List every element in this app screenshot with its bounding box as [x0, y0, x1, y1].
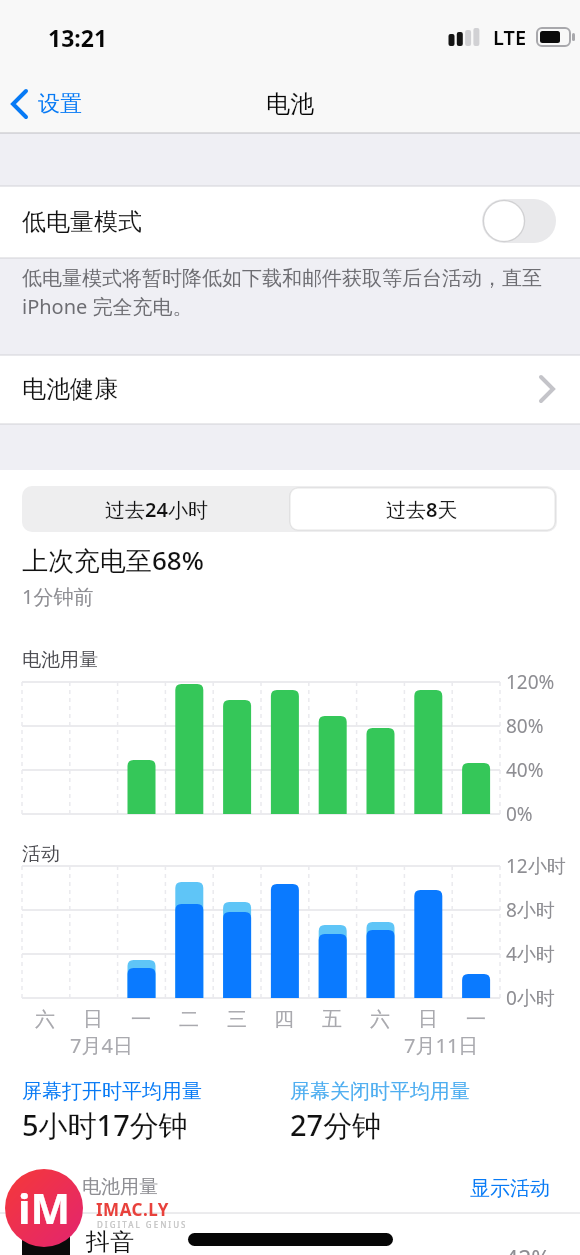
staticText: 0% [506, 801, 533, 827]
staticText: 设置 [38, 90, 82, 118]
staticText: 过去8天 [386, 496, 458, 523]
staticText: 120% [506, 669, 555, 695]
button[interactable] [8, 80, 118, 128]
staticText: 42% [505, 1242, 551, 1255]
staticText: 80% [506, 713, 544, 739]
staticText: 过去24小时 [105, 496, 208, 523]
staticText: 7月4日 [70, 1032, 133, 1059]
staticText: iPhone 完全充电。 [22, 293, 193, 320]
staticText: 电池用量 [82, 1175, 158, 1199]
button[interactable]: 显示活动 [0, 0, 250, 60]
staticText: 屏幕打开时平均用量 [22, 1079, 202, 1104]
staticText: 13:21 [48, 22, 108, 53]
staticText: 1分钟前 [22, 583, 94, 610]
button[interactable] [24, 488, 288, 530]
staticText: 27分钟 [290, 1105, 382, 1145]
staticText: 抖音 [86, 1227, 134, 1255]
staticText: 4小时 [506, 941, 555, 967]
staticText: 显示活动 [470, 1176, 550, 1201]
button[interactable] [290, 488, 555, 530]
staticText: 活动 [22, 842, 60, 866]
staticText: 12小时 [506, 853, 566, 879]
staticText: 40% [506, 757, 544, 783]
staticText: iM [18, 1179, 71, 1236]
staticText: 电池用量 [22, 648, 98, 672]
staticText: 一 [131, 1007, 151, 1032]
button[interactable] [0, 1214, 580, 1255]
staticText: 低电量模式 [22, 207, 142, 237]
staticText: 7月11日 [404, 1032, 479, 1059]
staticText: 屏幕关闭时平均用量 [290, 1079, 470, 1104]
staticText: 五 [322, 1007, 342, 1032]
staticText: 8小时 [506, 897, 555, 923]
staticText: 六 [370, 1007, 390, 1032]
staticText: 低电量模式将暂时降低如下载和邮件获取等后台活动，直至 [22, 266, 542, 291]
staticText: 二 [179, 1007, 199, 1032]
staticText: 日 [83, 1007, 103, 1032]
staticText: LTE [493, 24, 527, 51]
staticText: 日 [418, 1007, 438, 1032]
staticText: 一 [466, 1007, 486, 1032]
button[interactable] [0, 186, 580, 258]
button[interactable] [482, 199, 556, 243]
staticText: IMAC.LY [96, 1198, 169, 1221]
staticText: 电池 [266, 89, 314, 119]
button[interactable] [0, 355, 580, 424]
staticText: 电池健康 [22, 374, 118, 404]
staticText: 三 [227, 1007, 247, 1032]
staticText: 5小时17分钟 [22, 1105, 188, 1145]
staticText: 0小时 [506, 985, 555, 1011]
staticText: DIGITAL GENIUS [97, 1219, 188, 1230]
staticText: 上次充电至68% [22, 542, 204, 578]
staticText: 四 [274, 1007, 294, 1032]
staticText: 六 [35, 1007, 55, 1032]
